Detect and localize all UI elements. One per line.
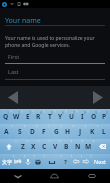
button[interactable]: 4 — [33, 109, 44, 124]
staticText: R — [36, 112, 41, 121]
staticText: 0 — [106, 110, 109, 115]
staticText: O — [91, 112, 97, 121]
staticText: W — [13, 112, 20, 121]
staticText: 4 — [40, 110, 43, 115]
button[interactable]: C — [39, 139, 50, 154]
button[interactable]: Next — [91, 154, 110, 169]
button[interactable]: 1 — [0, 109, 11, 124]
staticText: 6 — [62, 110, 65, 115]
staticText: J — [79, 127, 82, 136]
staticText: P — [102, 112, 107, 121]
staticText: 7 — [73, 110, 76, 115]
staticText: N — [75, 142, 81, 151]
button[interactable]: Next — [87, 86, 108, 109]
staticText: 文字 — [2, 159, 12, 165]
staticText: B — [64, 142, 69, 151]
button[interactable]: H — [62, 124, 74, 139]
button[interactable]: ? — [60, 154, 71, 169]
staticText: Z — [21, 142, 25, 151]
button[interactable]: X — [28, 139, 39, 154]
button[interactable]: L — [98, 124, 110, 139]
staticText: ? — [64, 158, 67, 166]
staticText: L — [102, 127, 106, 136]
button[interactable]: First — [5, 53, 105, 64]
button[interactable]: 6 — [55, 109, 66, 124]
button[interactable]: 記号 — [13, 154, 23, 169]
button[interactable]: A — [0, 124, 13, 139]
button[interactable] — [94, 139, 110, 154]
button[interactable]: 7 — [66, 109, 77, 124]
staticText: phone and Google services. — [5, 42, 70, 49]
button[interactable]: F — [38, 124, 50, 139]
staticText: U — [69, 112, 74, 121]
staticText: E — [26, 112, 30, 121]
button[interactable]: Previous — [2, 86, 23, 109]
staticText: C — [42, 142, 47, 151]
button[interactable]: J — [74, 124, 86, 139]
button[interactable]: 0 — [99, 109, 110, 124]
staticText: M — [85, 142, 92, 151]
button[interactable]: 文字 — [0, 154, 13, 169]
staticText: X — [31, 142, 36, 151]
staticText: Your name is used to personalize your — [5, 35, 95, 42]
button[interactable]: D — [26, 124, 38, 139]
button[interactable] — [0, 139, 17, 154]
staticText: Y — [58, 112, 63, 121]
staticText: H — [65, 127, 71, 136]
button[interactable] — [71, 154, 81, 169]
button[interactable]: Home — [36, 169, 73, 183]
staticText: I — [81, 112, 84, 121]
staticText: 3 — [29, 110, 32, 115]
staticText: A — [4, 127, 9, 136]
button[interactable]: 3 — [22, 109, 33, 124]
staticText: 9 — [95, 110, 98, 115]
button[interactable]: 9 — [88, 109, 99, 124]
button[interactable] — [23, 154, 33, 169]
staticText: F — [42, 127, 46, 136]
button[interactable]: M — [83, 139, 94, 154]
staticText: Next — [94, 158, 107, 165]
staticText: Your name — [5, 16, 41, 26]
button[interactable]: B — [61, 139, 72, 154]
button[interactable]: V — [50, 139, 61, 154]
staticText: 5 — [51, 110, 54, 115]
button[interactable] — [43, 154, 60, 169]
button[interactable]: Last — [5, 68, 105, 80]
staticText: K — [90, 127, 95, 136]
button[interactable]: Hide keyboard — [0, 169, 36, 183]
staticText: D — [30, 127, 35, 136]
staticText: First — [8, 53, 20, 60]
button[interactable]: K — [86, 124, 98, 139]
button[interactable]: 5 — [44, 109, 55, 124]
button[interactable] — [33, 154, 43, 169]
button[interactable]: S — [13, 124, 26, 139]
staticText: 2 — [18, 110, 21, 115]
staticText: 記号 — [14, 159, 22, 164]
button[interactable] — [81, 154, 91, 169]
button[interactable]: N — [72, 139, 83, 154]
staticText: V — [53, 142, 58, 151]
button[interactable]: Recent apps — [73, 169, 110, 183]
staticText: Last — [8, 68, 19, 75]
button[interactable]: 8 — [77, 109, 88, 124]
button[interactable]: G — [50, 124, 62, 139]
staticText: T — [48, 112, 52, 121]
button[interactable]: 2 — [11, 109, 22, 124]
staticText: S — [18, 127, 22, 136]
staticText: Q — [3, 112, 9, 121]
button[interactable]: Z — [17, 139, 28, 154]
staticText: 8 — [84, 110, 87, 115]
staticText: G — [54, 127, 59, 136]
staticText: 1 — [7, 110, 10, 115]
